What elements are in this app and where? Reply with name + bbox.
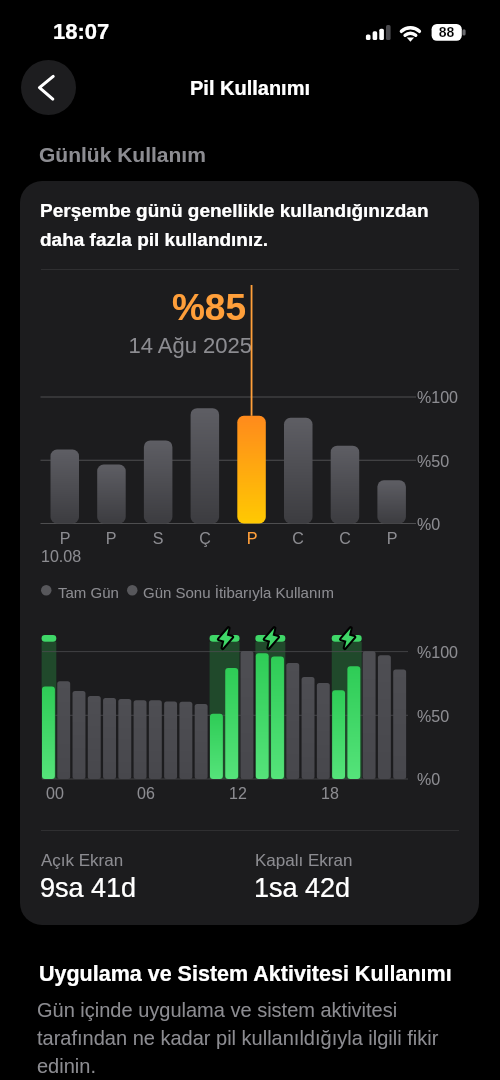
staticText: %0 [417, 771, 441, 789]
staticText: 1sa 42d [254, 873, 351, 903]
staticText: %100 [417, 644, 458, 662]
button[interactable]: Geri [21, 60, 76, 115]
staticText: 88 [431, 24, 462, 40]
staticText: 18:07 [53, 19, 110, 44]
staticText: S [138, 530, 178, 548]
staticText: Tam Gün [58, 584, 119, 601]
staticText: Perşembe günü genellikle kullandığınızda… [40, 200, 455, 250]
staticText: P [372, 530, 412, 548]
staticText: Günlük Kullanım [39, 143, 206, 166]
staticText: %100 [417, 389, 458, 407]
staticText: Pil Kullanımı [0, 77, 500, 99]
staticText: Kapalı Ekran [255, 851, 353, 870]
staticText: P [91, 530, 131, 548]
staticText: 14 Ağu 2025 [52, 333, 252, 358]
staticText: Açık Ekran [41, 851, 124, 870]
staticText: 00 [35, 785, 75, 803]
staticText: %50 [417, 453, 450, 471]
staticText: Gün içinde uygulama ve sistem aktivitesi… [37, 999, 449, 1077]
staticText: 06 [126, 785, 166, 803]
staticText: Ç [185, 530, 225, 548]
staticText: %50 [417, 708, 450, 726]
staticText: 12 [218, 785, 258, 803]
staticText: C [325, 530, 365, 548]
staticText: 10.08 [41, 548, 82, 566]
staticText: Uygulama ve Sistem Aktivitesi Kullanımı [39, 962, 452, 986]
staticText: %0 [417, 516, 441, 534]
staticText: P [232, 530, 272, 548]
staticText: C [278, 530, 318, 548]
staticText: 9sa 41d [40, 873, 137, 903]
staticText: P [45, 530, 85, 548]
staticText: 18 [310, 785, 350, 803]
staticText: %85 [46, 287, 246, 328]
staticText: Gün Sonu İtibarıyla Kullanım [143, 584, 334, 601]
